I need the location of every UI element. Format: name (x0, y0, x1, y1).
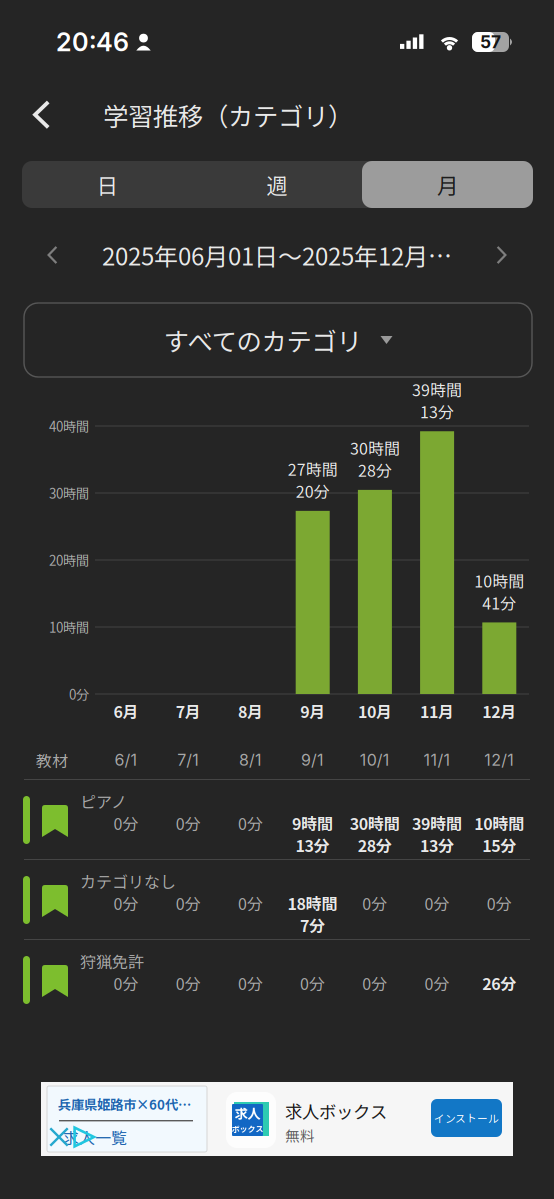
staticText: 0分 (362, 891, 387, 915)
staticText: 10時間 (474, 811, 524, 835)
staticText: 30時間 (350, 811, 400, 835)
button[interactable]: 兵庫県姫路市×60代… (41, 1082, 513, 1156)
staticText: 7分 (300, 913, 325, 937)
staticText: 57 (480, 31, 501, 52)
staticText: 10時間 (474, 569, 524, 592)
staticText: インストール (434, 1110, 499, 1126)
staticText: 28分 (358, 833, 392, 857)
staticText: 13分 (420, 400, 454, 423)
staticText: 11月 (420, 699, 454, 723)
button[interactable]: Next period (478, 232, 554, 278)
staticText: 0分 (487, 891, 512, 915)
staticText: 20時間 (49, 550, 89, 570)
staticText: 6/1 (114, 750, 137, 770)
staticText: 15分 (482, 833, 516, 857)
button[interactable]: Back (0, 83, 71, 147)
staticText: 40時間 (49, 416, 89, 436)
staticText: 18時間 (288, 891, 338, 915)
staticText: 0分 (176, 891, 201, 915)
staticText: 月 (437, 169, 458, 200)
staticText: 30時間 (350, 436, 400, 459)
staticText: 10時間 (49, 617, 89, 637)
staticText: 12/1 (484, 750, 514, 770)
staticText: 0分 (362, 971, 387, 995)
staticText: 13分 (296, 833, 330, 857)
staticText: 求人一覧 (63, 1125, 127, 1149)
staticText: 11/1 (423, 750, 450, 770)
staticText: 0分 (424, 891, 449, 915)
staticText: ボックス (231, 1123, 263, 1134)
staticText: 教材 (36, 748, 68, 772)
button[interactable]: Previous period (0, 232, 76, 278)
staticText: 6月 (114, 699, 139, 723)
staticText: 10/1 (360, 750, 390, 770)
staticText: 26分 (482, 971, 516, 995)
staticText: カテゴリなし (80, 869, 176, 893)
staticText: 39時間 (412, 811, 462, 835)
button[interactable]: 日 (22, 161, 192, 208)
staticText: 39時間 (412, 378, 462, 401)
staticText: 0分 (176, 811, 201, 835)
staticText: 9月 (300, 699, 325, 723)
staticText: 週 (266, 169, 287, 200)
staticText: 0分 (238, 971, 263, 995)
staticText: 兵庫県姫路市×60代… (58, 1094, 191, 1114)
staticText: 10月 (358, 699, 392, 723)
staticText: 0分 (176, 971, 201, 995)
staticText: 求人ボックス (285, 1098, 387, 1124)
staticText: 学習推移（カテゴリ） (103, 97, 353, 133)
staticText: 日 (96, 169, 117, 200)
staticText: 0分 (113, 971, 138, 995)
staticText: 12月 (482, 699, 516, 723)
staticText: 0分 (238, 811, 263, 835)
staticText: 27時間 (288, 457, 338, 480)
staticText: 30時間 (49, 483, 89, 503)
staticText: 無料 (285, 1124, 315, 1146)
staticText: 8/1 (239, 750, 262, 770)
staticText: 7/1 (177, 750, 199, 770)
staticText: 狩猟免許 (80, 949, 144, 973)
staticText: 9/1 (301, 750, 324, 770)
staticText: 0分 (113, 811, 138, 835)
staticText: 28分 (358, 458, 392, 481)
button[interactable]: すべてのカテゴリ (24, 303, 532, 377)
staticText: 求人 (234, 1103, 260, 1123)
staticText: 8月 (238, 699, 263, 723)
staticText: 0分 (69, 684, 89, 704)
staticText: 13分 (420, 833, 454, 857)
button[interactable]: 月 (362, 161, 533, 208)
staticText: 0分 (238, 891, 263, 915)
staticText: 7月 (176, 699, 201, 723)
staticText: 0分 (300, 971, 325, 995)
staticText: 9時間 (292, 811, 333, 835)
staticText: 20:46 (56, 27, 129, 57)
staticText: 20分 (296, 479, 330, 502)
staticText: 41分 (482, 591, 516, 614)
staticText: 0分 (113, 891, 138, 915)
staticText: すべてのカテゴリ (163, 322, 361, 358)
staticText: 2025年06月01日〜2025年12月… (102, 238, 452, 272)
staticText: 0分 (424, 971, 449, 995)
staticText: ピアノ (80, 789, 127, 813)
button[interactable]: 週 (192, 161, 362, 208)
